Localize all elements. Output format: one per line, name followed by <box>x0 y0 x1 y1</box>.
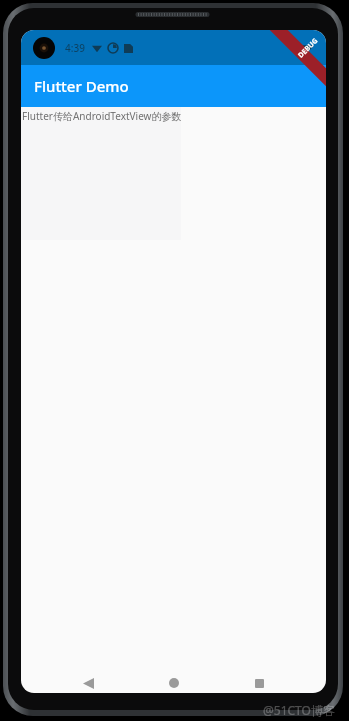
staticText: Flutter Demo <box>34 76 129 96</box>
button[interactable]: Back <box>70 665 106 701</box>
staticText: 4:39 <box>65 41 85 55</box>
button[interactable]: Recent apps <box>241 665 277 701</box>
staticText: Flutter传给AndroidTextView的参数 <box>22 109 182 123</box>
button[interactable]: Home <box>156 665 192 701</box>
staticText: DEBUG <box>296 36 321 60</box>
button[interactable]: Flutter Demo <box>21 65 326 107</box>
staticText: @51CTO博客 <box>263 702 335 718</box>
